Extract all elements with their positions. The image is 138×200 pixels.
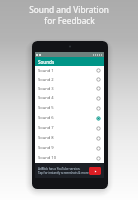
button[interactable]: Play YouTube ad (89, 167, 101, 175)
button[interactable]: Sound 8 (35, 133, 104, 143)
button[interactable]: Sound 2 (35, 75, 104, 84)
button[interactable]: Sound 1 (35, 66, 104, 75)
staticText: Sounds (38, 59, 55, 65)
button[interactable]: Sound 9 (35, 143, 104, 153)
button[interactable]: Sound 5 (35, 103, 104, 113)
staticText: Sound 8 (38, 135, 54, 141)
button[interactable]: Sound 10 (35, 153, 104, 163)
staticText: Sound 6 (38, 115, 54, 121)
staticText: Sound 9 (38, 145, 54, 151)
button[interactable]: Sounds (35, 57, 104, 66)
button[interactable]: Sound 7 (35, 123, 104, 133)
staticText: Sound 1 (38, 68, 54, 74)
button[interactable]: Sound 3 (35, 84, 104, 93)
staticText: Tap for instantly screenshots & more (38, 171, 89, 175)
staticText: Sound 5 (38, 105, 54, 111)
button[interactable]: Sound 6 (35, 113, 104, 123)
button[interactable]: Sound 4 (35, 93, 104, 103)
staticText: Sound 2 (38, 77, 54, 83)
staticText: Sound 7 (38, 125, 54, 131)
staticText: Sound 4 (38, 95, 54, 101)
staticText: Sound and Vibration (29, 4, 109, 15)
staticText: AdMob has a YouTube version. (38, 167, 81, 171)
staticText: Sound 10 (38, 155, 57, 161)
staticText: for Feedback (44, 15, 95, 26)
staticText: Sound 3 (38, 86, 54, 92)
button[interactable]: AdMob has a YouTube version. (35, 163, 104, 178)
